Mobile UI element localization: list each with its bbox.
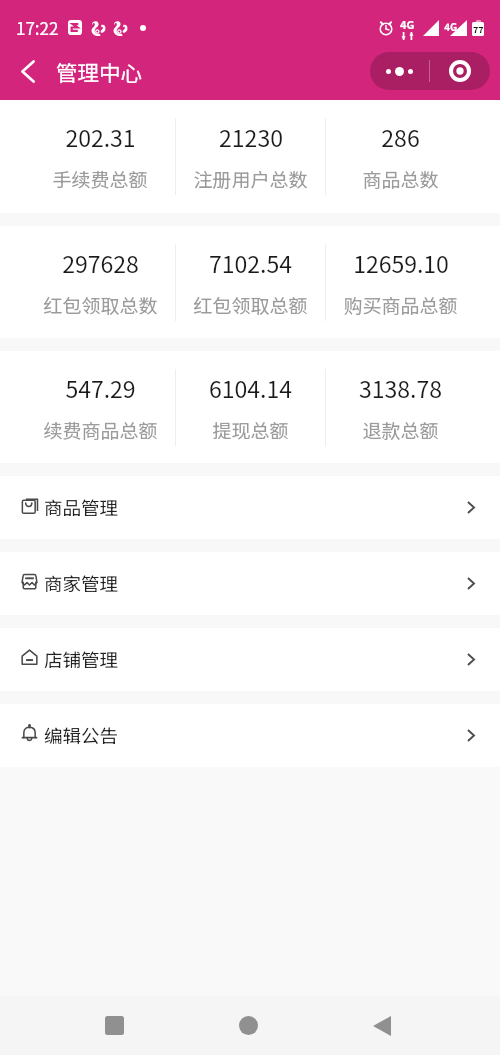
button[interactable]: 商家管理 <box>0 552 500 615</box>
staticText: 77 <box>473 23 484 36</box>
staticText: 7102.54 <box>209 246 292 279</box>
staticText: 提现总额 <box>212 416 289 444</box>
staticText: 286 <box>381 120 420 153</box>
staticText: 17:22 <box>16 15 59 40</box>
button[interactable]: More options <box>370 52 429 90</box>
button[interactable]: Close mini program <box>430 52 490 90</box>
staticText: 退款总额 <box>362 416 439 444</box>
staticText: 商品总数 <box>362 165 439 193</box>
staticText: 购买商品总额 <box>343 291 458 319</box>
button[interactable]: Back <box>315 996 449 1055</box>
staticText: 管理中心 <box>56 56 143 87</box>
button[interactable]: 商品管理 <box>0 476 500 539</box>
staticText: 4G <box>444 19 458 33</box>
staticText: 手续费总额 <box>52 165 148 193</box>
button[interactable]: 编辑公告 <box>0 704 500 767</box>
staticText: 编辑公告 <box>44 722 119 749</box>
staticText: 202.31 <box>65 120 136 153</box>
button[interactable]: Recent apps <box>47 996 181 1055</box>
staticText: 店铺管理 <box>44 646 119 673</box>
button[interactable]: Home <box>181 996 315 1055</box>
staticText: 红包领取总数 <box>43 291 158 319</box>
staticText: 12659.10 <box>353 246 449 279</box>
staticText: 注册用户总数 <box>193 165 308 193</box>
staticText: 续费商品总额 <box>43 416 158 444</box>
staticText: 3138.78 <box>359 371 442 404</box>
button[interactable]: 店铺管理 <box>0 628 500 691</box>
staticText: 297628 <box>62 246 139 279</box>
staticText: 红包领取总额 <box>193 291 308 319</box>
staticText: 21230 <box>219 120 283 153</box>
staticText: 547.29 <box>65 371 136 404</box>
staticText: 6104.14 <box>209 371 292 404</box>
staticText: 4G <box>400 16 415 32</box>
staticText: 商家管理 <box>44 570 119 597</box>
staticText: 商品管理 <box>44 494 119 521</box>
button[interactable]: Back <box>5 48 51 94</box>
